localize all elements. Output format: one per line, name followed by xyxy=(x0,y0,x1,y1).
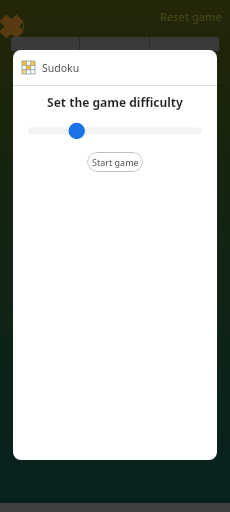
button[interactable]: Mistakes xyxy=(4,17,27,35)
button[interactable]: Reset game xyxy=(152,5,230,28)
button[interactable]: Start game xyxy=(87,152,143,172)
button[interactable] xyxy=(28,122,202,140)
staticText: Sudoku xyxy=(42,61,80,75)
staticText: Reset game xyxy=(160,9,222,24)
other: Sudoku xyxy=(22,61,35,74)
staticText: Start game xyxy=(92,156,139,168)
staticText: Set the game difficulty xyxy=(13,94,217,110)
button[interactable] xyxy=(150,37,219,51)
staticText: 0 xyxy=(19,19,25,33)
button[interactable] xyxy=(80,37,149,51)
button[interactable] xyxy=(11,37,79,51)
